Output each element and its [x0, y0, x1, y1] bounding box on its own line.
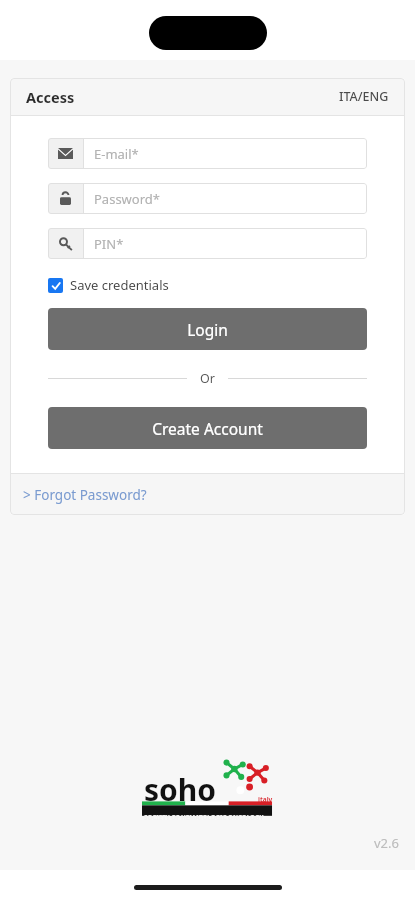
button[interactable]: Create Account — [48, 407, 367, 449]
staticText: ITA/ENG — [339, 88, 389, 105]
staticText: E-mail* — [94, 145, 139, 163]
staticText: Login — [187, 319, 228, 340]
other: Password — [60, 192, 71, 205]
staticText: Access — [26, 87, 75, 107]
button[interactable]: Save credentials — [48, 276, 169, 294]
staticText: v2.6 — [374, 834, 399, 852]
button[interactable]: Login — [48, 308, 367, 350]
staticText: SOCIETY OF HEMATOLOGIC ONCOLOGY — [144, 813, 264, 821]
button[interactable]: E-mail — [48, 138, 367, 169]
staticText: Or — [200, 370, 215, 387]
other: E-mail — [58, 148, 73, 159]
staticText: > Forgot Password? — [23, 486, 147, 504]
other: PIN — [59, 237, 73, 251]
button[interactable]: > Forgot Password? — [10, 474, 405, 515]
staticText: Create Account — [152, 418, 263, 439]
staticText: PIN* — [94, 235, 124, 253]
button[interactable]: PIN — [48, 228, 367, 259]
staticText: Save credentials — [70, 276, 169, 294]
button[interactable]: Password — [48, 183, 367, 214]
staticText: italy — [258, 795, 273, 804]
button[interactable]: ITA/ENG — [323, 82, 405, 111]
staticText: soho — [144, 769, 217, 810]
staticText: Password* — [94, 190, 160, 208]
